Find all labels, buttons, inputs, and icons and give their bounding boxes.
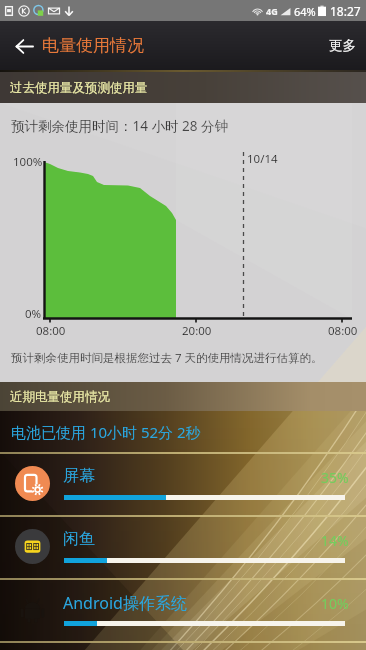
staticText: Android操作系统 [63,592,187,614]
staticText: 18:27 [330,3,361,19]
staticText: 100% [13,154,43,170]
staticText: 64% [294,4,316,19]
staticText: 35% [321,468,349,487]
staticText: 10% [321,594,349,613]
staticText: 预计剩余使用时间是根据您过去 7 天的使用情况进行估算的。 [11,350,323,366]
button[interactable]: 闲鱼 [0,515,366,578]
staticText: 08:00 [328,323,358,339]
staticText: 10/14 [247,151,278,167]
staticText: 08:00 [36,323,66,339]
staticText: 20:00 [182,323,212,339]
staticText: 过去使用量及预测使用量 [10,80,148,96]
staticText: 屏幕 [63,466,95,486]
staticText: 预计剩余使用时间：14 小时 28 分钟 [11,117,228,135]
staticText: 近期电量使用情况 [10,389,110,405]
staticText: 电池已使用 10小时 52分 2秒 [11,422,201,442]
staticText: 电量使用情况 [42,35,144,56]
staticText: 4G [266,5,278,17]
button[interactable]: Android操作系统 [0,578,366,641]
button[interactable]: Back [6,28,42,64]
button[interactable]: 更多 [319,23,366,68]
staticText: 14% [321,531,349,550]
staticText: 0% [25,306,42,322]
staticText: 闲鱼 [63,529,95,549]
staticText: 更多 [329,37,356,54]
button[interactable]: 屏幕 [0,452,366,515]
